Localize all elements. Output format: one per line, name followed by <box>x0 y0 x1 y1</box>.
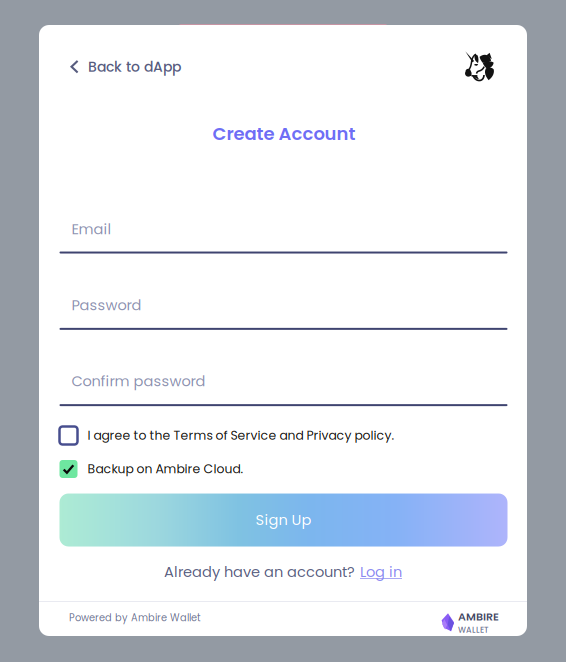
button[interactable]: I agree to the Terms of Service and Priv… <box>59 424 507 446</box>
staticText: WALLET <box>458 624 489 636</box>
staticText: Log in <box>360 562 402 582</box>
staticText: Sign Up <box>255 510 311 530</box>
staticText: I agree to the Terms of Service and Priv… <box>87 427 394 444</box>
staticText: Password <box>71 295 141 315</box>
button[interactable]: Back to dApp <box>60 50 191 84</box>
staticText: Powered by Ambire Wallet <box>69 611 201 625</box>
staticText: Already have an account? <box>164 562 355 582</box>
staticText: Confirm password <box>71 371 205 391</box>
button[interactable]: Log in <box>360 562 402 582</box>
staticText: Create Account <box>212 121 355 146</box>
staticText: Backup on Ambire Cloud. <box>87 460 243 477</box>
button[interactable]: Sign Up <box>59 493 507 546</box>
button[interactable]: Uniswap <box>459 45 501 87</box>
staticText: Email <box>71 219 111 239</box>
staticText: Back to dApp <box>88 57 181 77</box>
staticText: AMBIRE <box>458 609 499 624</box>
button[interactable]: Backup on Ambire Cloud. <box>59 458 507 480</box>
